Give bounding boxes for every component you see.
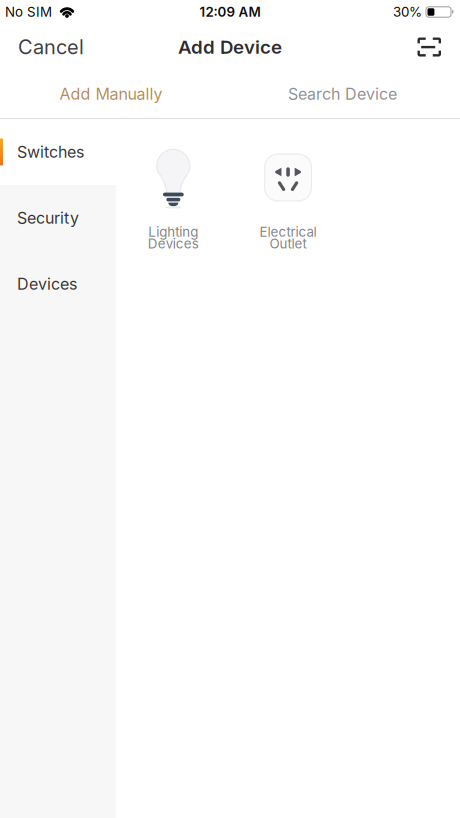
staticText: Electrical xyxy=(260,224,317,240)
button[interactable]: Cancel xyxy=(18,35,84,59)
button[interactable]: Search Device xyxy=(230,70,460,118)
staticText: Lighting xyxy=(148,224,198,240)
button[interactable]: Electrical xyxy=(231,149,345,251)
staticText: Devices xyxy=(148,236,199,251)
staticText: 12:09 AM xyxy=(199,4,260,20)
button[interactable]: Switches xyxy=(0,119,116,185)
staticText: Search Device xyxy=(288,85,397,103)
button[interactable]: Devices xyxy=(0,251,116,317)
button[interactable]: Security xyxy=(0,185,116,251)
staticText: 30% xyxy=(393,4,422,20)
button[interactable]: Add Manually xyxy=(0,70,230,118)
button[interactable]: Scan QR Code xyxy=(417,37,441,56)
staticText: Switches xyxy=(17,143,84,161)
button[interactable]: Lighting xyxy=(116,149,231,251)
staticText: Add Device xyxy=(178,36,282,58)
staticText: Outlet xyxy=(270,236,307,251)
staticText: Devices xyxy=(17,275,77,293)
staticText: Security xyxy=(17,209,79,227)
staticText: Add Manually xyxy=(59,85,162,103)
staticText: Cancel xyxy=(18,35,84,59)
staticText: No SIM xyxy=(5,4,52,20)
